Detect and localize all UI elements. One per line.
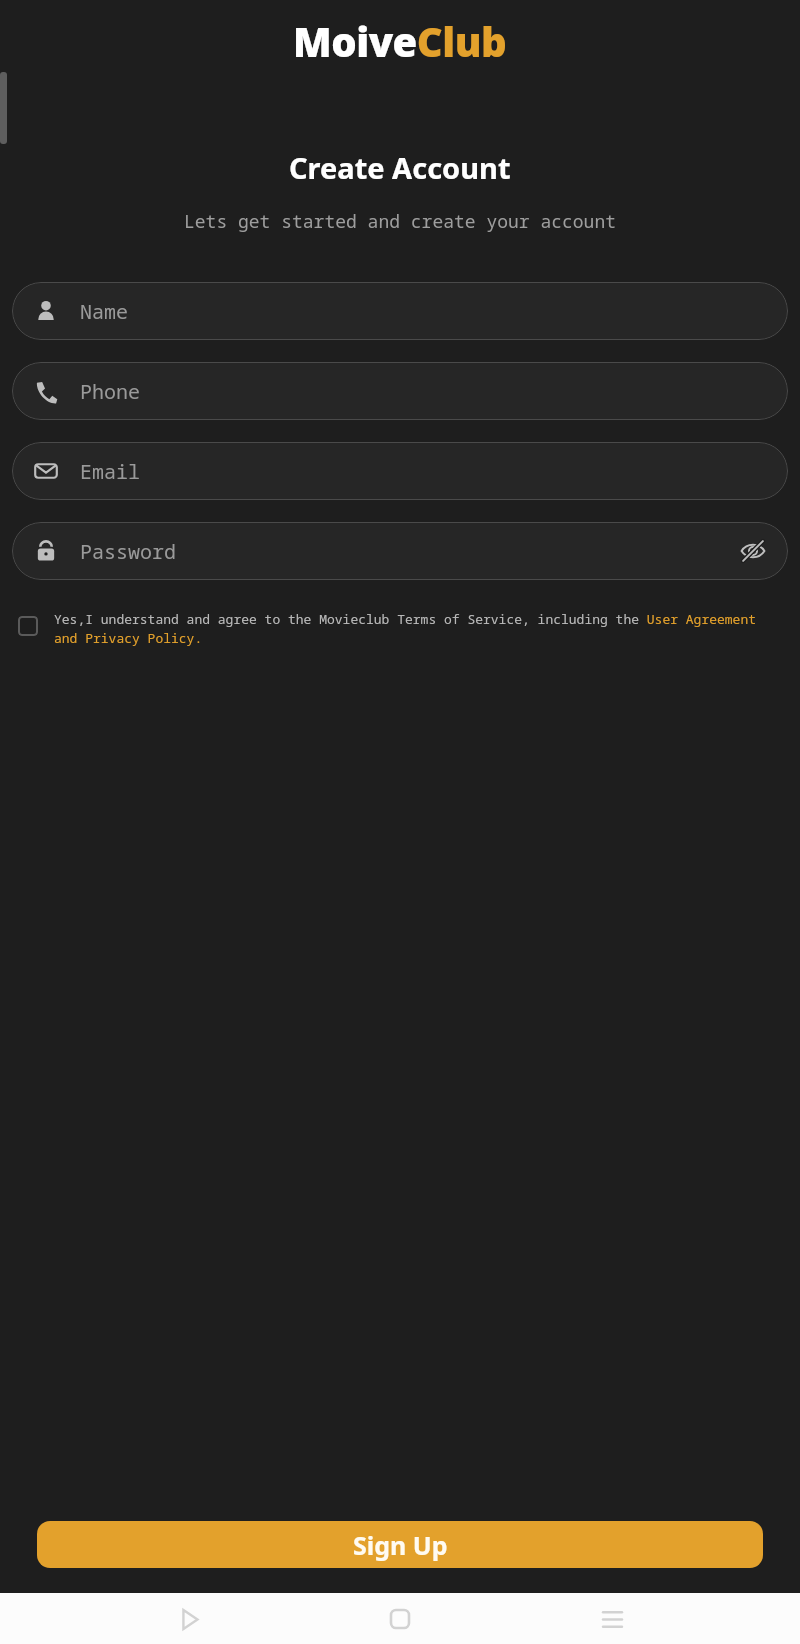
- button[interactable]: Sign Up: [37, 1521, 763, 1568]
- button[interactable]: Password: [12, 522, 788, 580]
- staticText: Create Account: [289, 148, 511, 187]
- button[interactable]: Recent apps: [589, 1596, 635, 1642]
- staticText: Yes,I understand and agree to the Moviec…: [54, 610, 774, 647]
- other: Agree to terms checkbox: [18, 616, 38, 636]
- button[interactable]: Show password: [740, 538, 766, 564]
- staticText: Lets get started and create your account: [184, 209, 616, 234]
- staticText: Email: [80, 458, 140, 485]
- button[interactable]: Back: [166, 1596, 212, 1642]
- staticText: Name: [80, 298, 128, 325]
- button[interactable]: Name: [12, 282, 788, 340]
- button[interactable]: Email: [12, 442, 788, 500]
- staticText: MoiveClub: [293, 14, 507, 68]
- button[interactable]: Home: [377, 1596, 423, 1642]
- staticText: Password: [80, 538, 176, 565]
- staticText: Phone: [80, 378, 140, 405]
- button[interactable]: Agree to terms checkbox: [18, 610, 774, 647]
- staticText: Sign Up: [353, 1528, 448, 1562]
- button[interactable]: Phone: [12, 362, 788, 420]
